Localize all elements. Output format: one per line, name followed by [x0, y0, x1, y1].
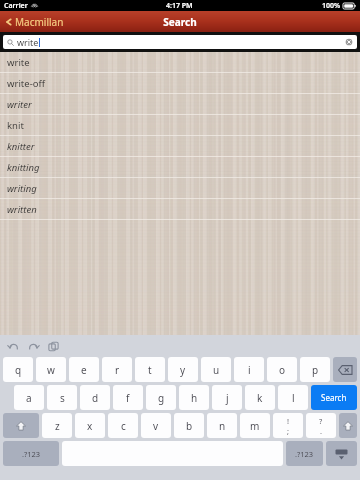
staticText: g	[158, 391, 165, 405]
button[interactable]: knit	[0, 115, 360, 136]
button[interactable]: k	[245, 385, 275, 410]
staticText: knitter	[7, 140, 35, 153]
button[interactable]: w	[36, 357, 66, 382]
staticText: f	[126, 391, 130, 405]
staticText: o	[279, 363, 286, 377]
button[interactable]: writing	[0, 178, 360, 199]
staticText: ;	[287, 426, 290, 436]
button[interactable]: a	[14, 385, 44, 410]
staticText: l	[292, 391, 295, 405]
staticText: k	[257, 391, 263, 405]
staticText: z	[55, 419, 60, 433]
button[interactable]: o	[267, 357, 297, 382]
button[interactable]: Backspace	[333, 357, 357, 382]
button[interactable]: y	[168, 357, 198, 382]
staticText: j	[226, 391, 229, 405]
button[interactable]: write-off	[0, 73, 360, 94]
staticText: Search	[321, 392, 347, 403]
staticText: knit	[7, 119, 24, 132]
staticText: write	[17, 36, 39, 48]
button[interactable]: Macmillan	[0, 13, 70, 31]
button[interactable]: write	[0, 52, 360, 73]
button[interactable]: Undo	[8, 341, 19, 352]
button[interactable]: r	[102, 357, 132, 382]
staticText: Search	[0, 15, 360, 29]
button[interactable]: Search	[311, 385, 357, 410]
button[interactable]: written	[0, 199, 360, 220]
button[interactable]: .?123	[3, 441, 59, 466]
staticText: e	[81, 363, 87, 377]
staticText: Carrier	[4, 1, 28, 11]
button[interactable]: z	[42, 413, 72, 438]
staticText: a	[26, 391, 32, 405]
button[interactable]: Shift	[3, 413, 39, 438]
staticText: writing	[7, 182, 37, 195]
staticText: d	[92, 391, 99, 405]
button[interactable]: u	[201, 357, 231, 382]
staticText: knitting	[7, 161, 40, 174]
button[interactable]: b	[174, 413, 204, 438]
staticText: n	[219, 419, 226, 433]
staticText: ?	[319, 416, 323, 426]
staticText: s	[60, 391, 65, 405]
button[interactable]: d	[80, 385, 110, 410]
staticText: b	[186, 419, 193, 433]
button[interactable]: v	[141, 413, 171, 438]
button[interactable]: ?	[306, 413, 336, 438]
button[interactable]: Hide keyboard	[326, 441, 357, 466]
staticText: .	[320, 426, 323, 436]
staticText: q	[15, 363, 22, 377]
button[interactable]: p	[300, 357, 330, 382]
button[interactable]: h	[179, 385, 209, 410]
button[interactable]: e	[69, 357, 99, 382]
button[interactable]: j	[212, 385, 242, 410]
staticText: u	[213, 363, 220, 377]
button[interactable]: Redo	[28, 341, 39, 352]
staticText: h	[191, 391, 198, 405]
button[interactable]: n	[207, 413, 237, 438]
staticText: write	[7, 56, 30, 69]
button[interactable]: l	[278, 385, 308, 410]
button[interactable]: i	[234, 357, 264, 382]
staticText: v	[153, 419, 159, 433]
staticText: !	[287, 416, 290, 426]
button[interactable]: f	[113, 385, 143, 410]
button[interactable]: writer	[0, 94, 360, 115]
staticText: w	[47, 363, 55, 377]
button[interactable]: c	[108, 413, 138, 438]
staticText: written	[7, 203, 37, 216]
staticText: .?123	[295, 449, 314, 459]
button[interactable]: knitting	[0, 157, 360, 178]
button[interactable]: !	[273, 413, 303, 438]
staticText: 100%	[322, 1, 341, 11]
staticText: .?123	[22, 449, 41, 459]
button[interactable]: Shift	[339, 413, 357, 438]
staticText: i	[248, 363, 251, 377]
staticText: m	[250, 419, 260, 433]
staticText: write-off	[7, 77, 45, 90]
staticText: x	[87, 419, 93, 433]
button[interactable]: m	[240, 413, 270, 438]
staticText: writer	[7, 98, 32, 111]
button[interactable]: Paste	[48, 341, 59, 352]
button[interactable]: .?123	[286, 441, 323, 466]
button[interactable]: knitter	[0, 136, 360, 157]
button[interactable]: g	[146, 385, 176, 410]
button[interactable]: Clear text	[345, 38, 353, 46]
button[interactable]: q	[3, 357, 33, 382]
staticText: Macmillan	[15, 15, 64, 29]
staticText: c	[121, 419, 126, 433]
button[interactable]: write	[3, 35, 357, 49]
button[interactable]: s	[47, 385, 77, 410]
button[interactable]: t	[135, 357, 165, 382]
button[interactable]: x	[75, 413, 105, 438]
staticText: y	[180, 363, 186, 377]
staticText: 4:17 PM	[166, 1, 193, 11]
staticText: p	[312, 363, 319, 377]
staticText: r	[115, 363, 120, 377]
staticText: t	[148, 363, 152, 377]
